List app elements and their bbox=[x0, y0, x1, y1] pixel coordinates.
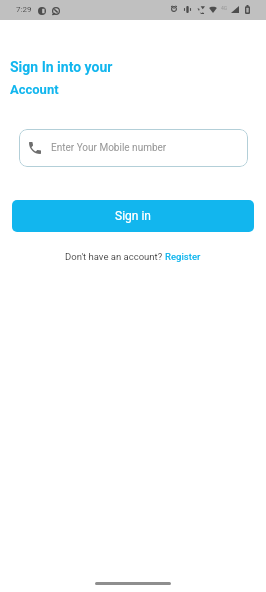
staticText: 7:29 bbox=[16, 5, 32, 14]
staticText: Enter Your Mobile number bbox=[51, 142, 167, 154]
button[interactable]: Enter Your Mobile number bbox=[19, 129, 248, 167]
button[interactable]: Sign in bbox=[12, 200, 254, 232]
staticText: 4G bbox=[221, 5, 228, 11]
staticText: Account bbox=[10, 82, 59, 97]
staticText: Sign in bbox=[115, 209, 151, 223]
staticText: Don't have an account? bbox=[65, 251, 165, 262]
staticText: Register bbox=[165, 251, 201, 262]
button[interactable]: Register bbox=[165, 251, 201, 262]
staticText: Sign In into your bbox=[10, 59, 113, 75]
